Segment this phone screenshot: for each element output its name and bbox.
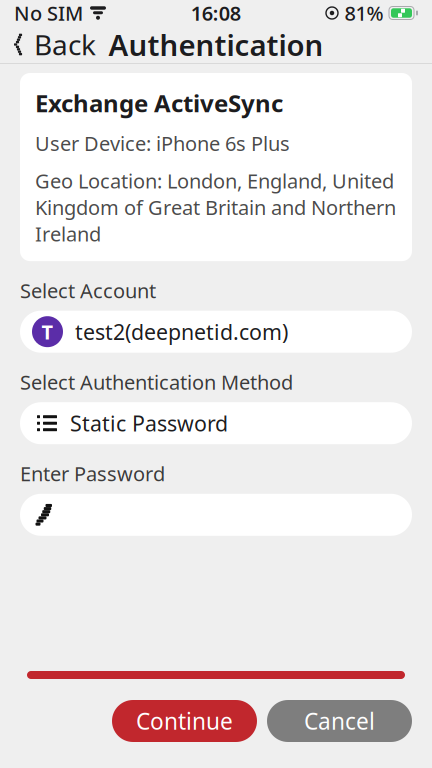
- staticText: User Device: iPhone 6s Plus: [35, 130, 290, 156]
- staticText: Continue: [136, 706, 233, 736]
- staticText: Select Account: [20, 277, 156, 304]
- button[interactable]: Back: [0, 21, 110, 68]
- staticText: 81%: [344, 0, 383, 26]
- staticText: T: [41, 318, 53, 345]
- staticText: Enter Password: [20, 460, 165, 487]
- staticText: Select Authentication Method: [20, 369, 293, 395]
- button[interactable]: T: [0, 311, 432, 353]
- staticText: Static Password: [70, 409, 228, 437]
- staticText: No SIM: [14, 0, 83, 26]
- button[interactable]: Static Password: [0, 402, 432, 444]
- staticText: 16:08: [191, 0, 241, 26]
- staticText: Authentication: [108, 25, 323, 64]
- button[interactable]: Cancel: [267, 700, 412, 742]
- staticText: Back: [34, 26, 96, 63]
- staticText: Exchange ActiveSync: [35, 87, 283, 119]
- staticText: Cancel: [304, 706, 375, 736]
- staticText: test2(deepnetid.com): [75, 317, 288, 346]
- button[interactable]: Continue: [112, 700, 257, 742]
- button[interactable]: Enter Password: [0, 494, 432, 536]
- staticText: Geo Location: London, England, United Ki…: [35, 167, 396, 247]
